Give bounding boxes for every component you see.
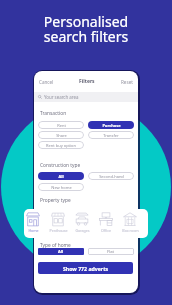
staticText: Rent [57,123,66,128]
button[interactable]: Share [38,131,84,139]
staticText: Type of home [40,242,71,249]
button[interactable]: Garages [70,212,94,233]
button[interactable]: Purchase [88,121,134,129]
staticText: Box room [122,228,139,233]
staticText: Penthouse [49,228,68,233]
staticText: Property type [40,197,71,204]
staticText: Second-hand [99,174,124,179]
staticText: All [58,174,64,179]
button[interactable]: All [38,248,84,255]
button[interactable]: Cancel [39,79,54,85]
button[interactable]: Rent buy option [38,141,84,149]
button[interactable]: Transfer [88,131,134,139]
staticText: Your search area [44,94,79,100]
staticText: Home [28,228,39,233]
staticText: Personalised search filters [0,12,172,46]
staticText: Purchase [102,123,121,128]
button[interactable]: Reset [121,79,133,85]
button[interactable]: Home [24,212,45,233]
button[interactable]: Office [94,212,118,233]
button[interactable]: Flat [88,248,134,255]
staticText: Transfer [103,133,119,138]
staticText: Share [56,133,67,138]
button[interactable]: Second-hand [88,172,134,180]
staticText: Office [101,228,111,233]
staticText: Garages [75,228,90,233]
staticText: Filters [79,78,95,85]
button[interactable]: All [38,172,84,180]
button[interactable]: Penthouse [46,212,70,233]
button[interactable]: New home [38,183,84,191]
staticText: Construction type [40,162,81,169]
staticText: All [58,249,64,254]
staticText: Transaction [40,110,67,117]
button[interactable]: Your search area [34,92,138,102]
staticText: New home [51,185,72,190]
staticText: Flat [107,249,115,255]
button[interactable]: Rent [38,121,84,129]
staticText: Rent buy option [46,143,76,148]
staticText: Show 772 adverts [63,265,109,272]
button[interactable]: Box room [118,212,142,233]
button[interactable]: Show 772 adverts [38,262,133,274]
